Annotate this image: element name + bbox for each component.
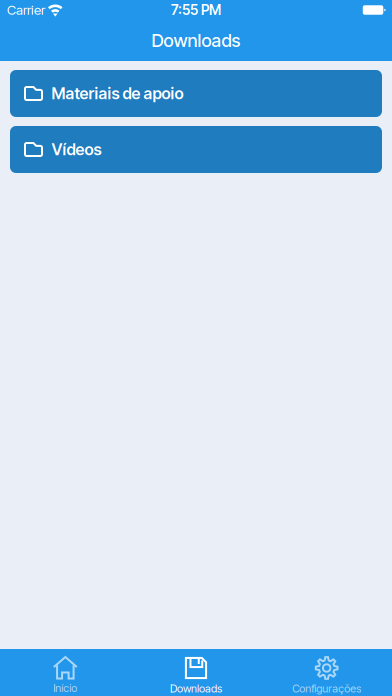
staticText: Downloads: [151, 30, 240, 51]
button[interactable]: Configurações: [261, 649, 392, 696]
button[interactable]: Vídeos: [10, 126, 382, 173]
staticText: Início: [53, 681, 77, 695]
staticText: 7:55 PM: [171, 1, 221, 18]
staticText: Vídeos: [51, 140, 101, 159]
button[interactable]: Materiais de apoio: [10, 70, 382, 117]
button[interactable]: Início: [0, 649, 131, 696]
staticText: Materiais de apoio: [51, 84, 183, 103]
staticText: Configurações: [292, 682, 361, 695]
staticText: Carrier: [7, 2, 45, 18]
staticText: Downloads: [170, 682, 222, 695]
button[interactable]: Downloads: [131, 649, 261, 696]
